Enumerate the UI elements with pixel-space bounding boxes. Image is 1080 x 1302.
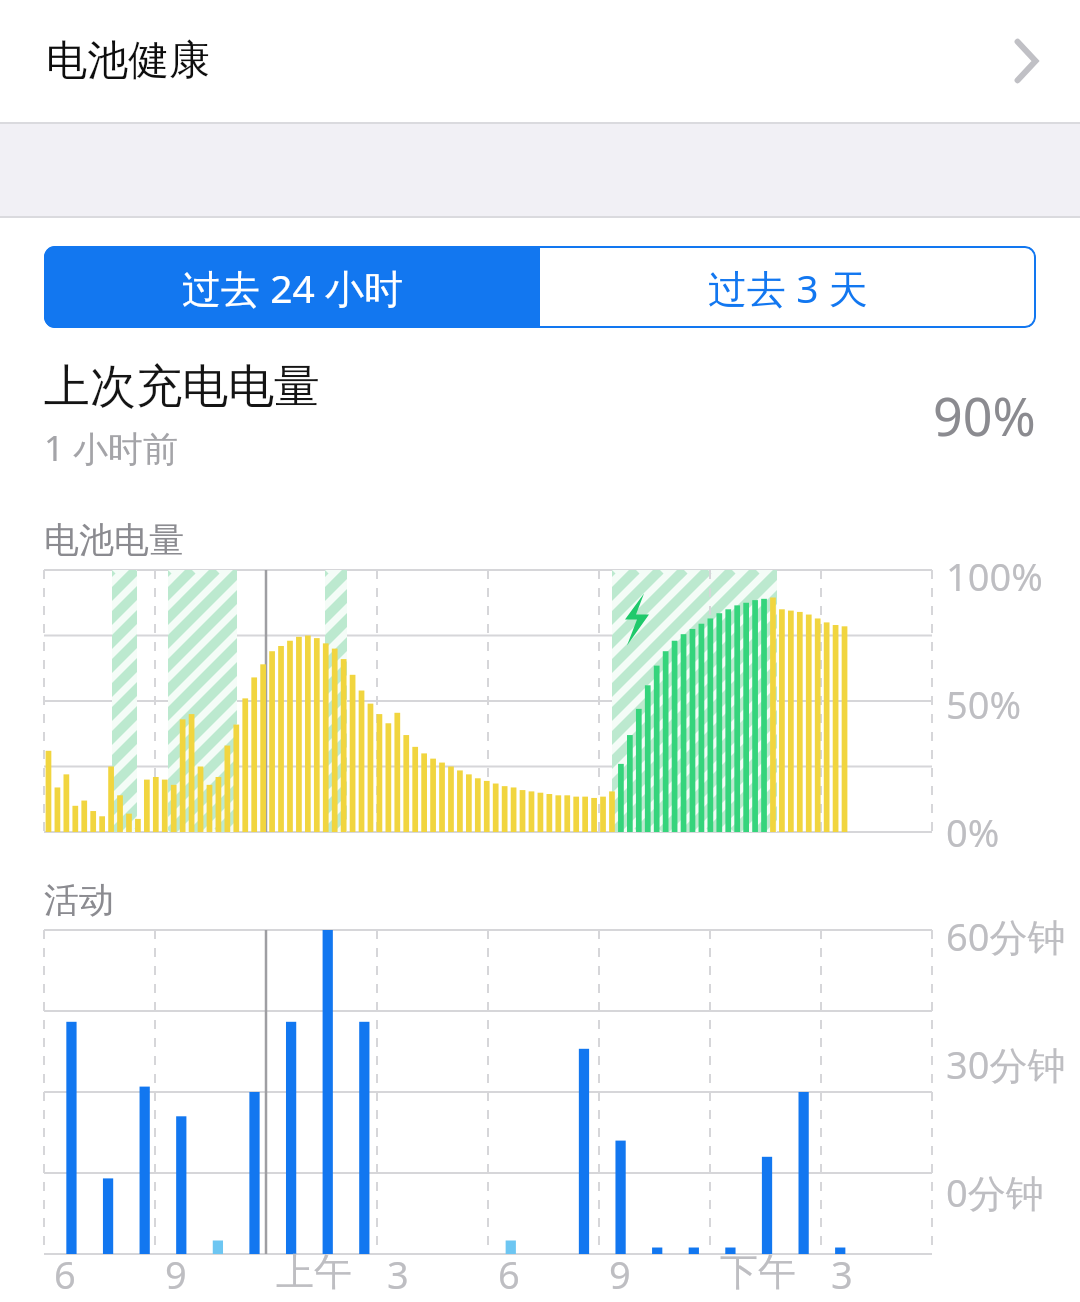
button[interactable]: 过去 24 小时	[44, 246, 540, 328]
staticText: 0分钟	[946, 1166, 1044, 1218]
other: 打开电池健康	[1012, 37, 1040, 85]
staticText: 活动	[44, 878, 114, 922]
staticText: 3	[831, 1248, 853, 1300]
staticText: 上次充电电量	[44, 358, 320, 416]
staticText: 1 小时前	[44, 424, 179, 472]
staticText: 9	[165, 1248, 187, 1300]
staticText: 电池电量	[44, 518, 184, 562]
staticText: 30分钟	[946, 1038, 1066, 1090]
staticText: 下午	[720, 1248, 796, 1296]
staticText: 电池健康	[46, 35, 210, 87]
staticText: 0%	[946, 806, 1000, 858]
button[interactable]: 电池健康	[0, 0, 1080, 122]
staticText: 50%	[946, 678, 1022, 730]
staticText: 60分钟	[946, 910, 1066, 962]
staticText: 上午	[276, 1248, 352, 1296]
staticText: 100%	[946, 550, 1043, 602]
staticText: 3	[387, 1248, 409, 1300]
staticText: 过去 24 小时	[182, 261, 403, 314]
staticText: 90%	[933, 380, 1036, 451]
staticText: 6	[498, 1248, 520, 1300]
button[interactable]: 过去 3 天	[540, 246, 1036, 328]
staticText: 6	[54, 1248, 76, 1300]
staticText: 过去 3 天	[708, 261, 868, 314]
staticText: 9	[609, 1248, 631, 1300]
